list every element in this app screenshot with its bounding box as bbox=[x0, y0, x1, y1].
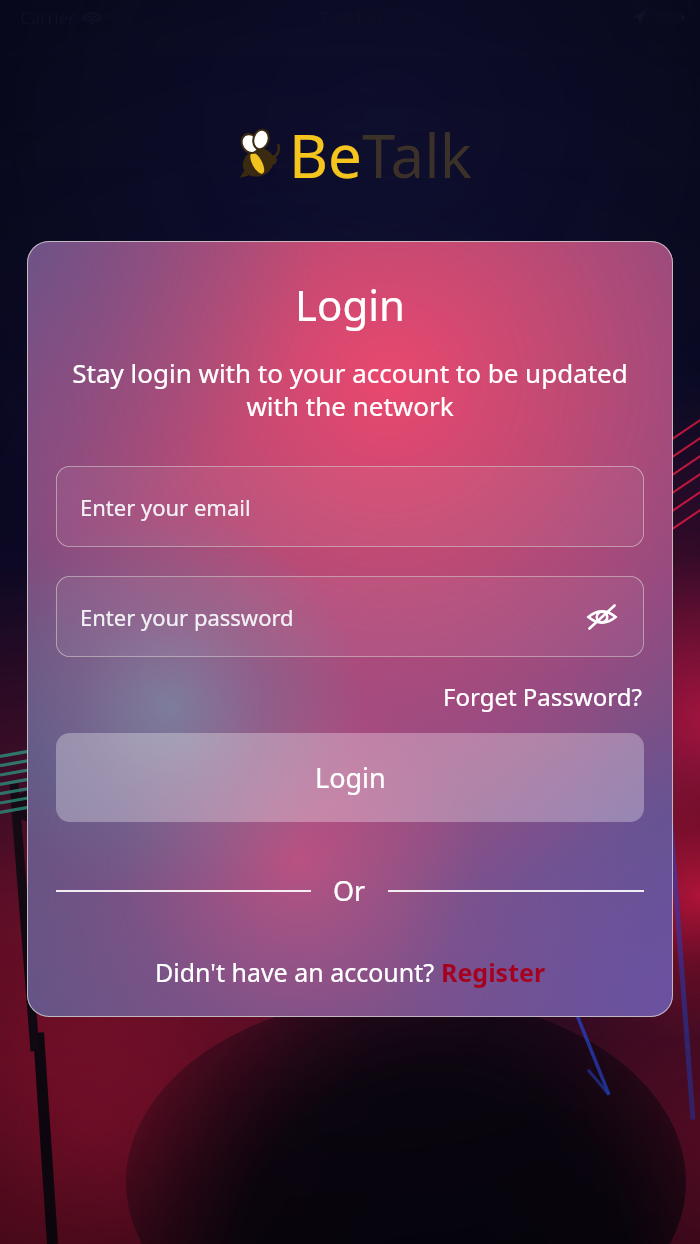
button[interactable]: Didn't have an account? bbox=[155, 955, 546, 989]
staticText: Talk bbox=[362, 114, 472, 196]
staticText: Didn't have an account? bbox=[155, 955, 441, 989]
staticText: Register bbox=[441, 955, 546, 989]
staticText: Stay login with to your account to be up… bbox=[56, 355, 644, 424]
staticText: Login bbox=[295, 276, 406, 333]
staticText: Enter your password bbox=[80, 602, 294, 632]
staticText: Forget Password? bbox=[443, 680, 642, 713]
staticText: Be bbox=[289, 114, 362, 196]
button[interactable]: Login bbox=[56, 733, 644, 822]
button[interactable]: Enter your email bbox=[56, 466, 644, 547]
staticText: Or bbox=[333, 872, 366, 909]
button[interactable]: Show password bbox=[580, 595, 624, 639]
button[interactable]: Forget Password? bbox=[441, 677, 644, 716]
staticText: Enter your email bbox=[80, 492, 251, 522]
button[interactable]: Enter your password bbox=[56, 576, 644, 657]
staticText: Login bbox=[315, 759, 386, 796]
